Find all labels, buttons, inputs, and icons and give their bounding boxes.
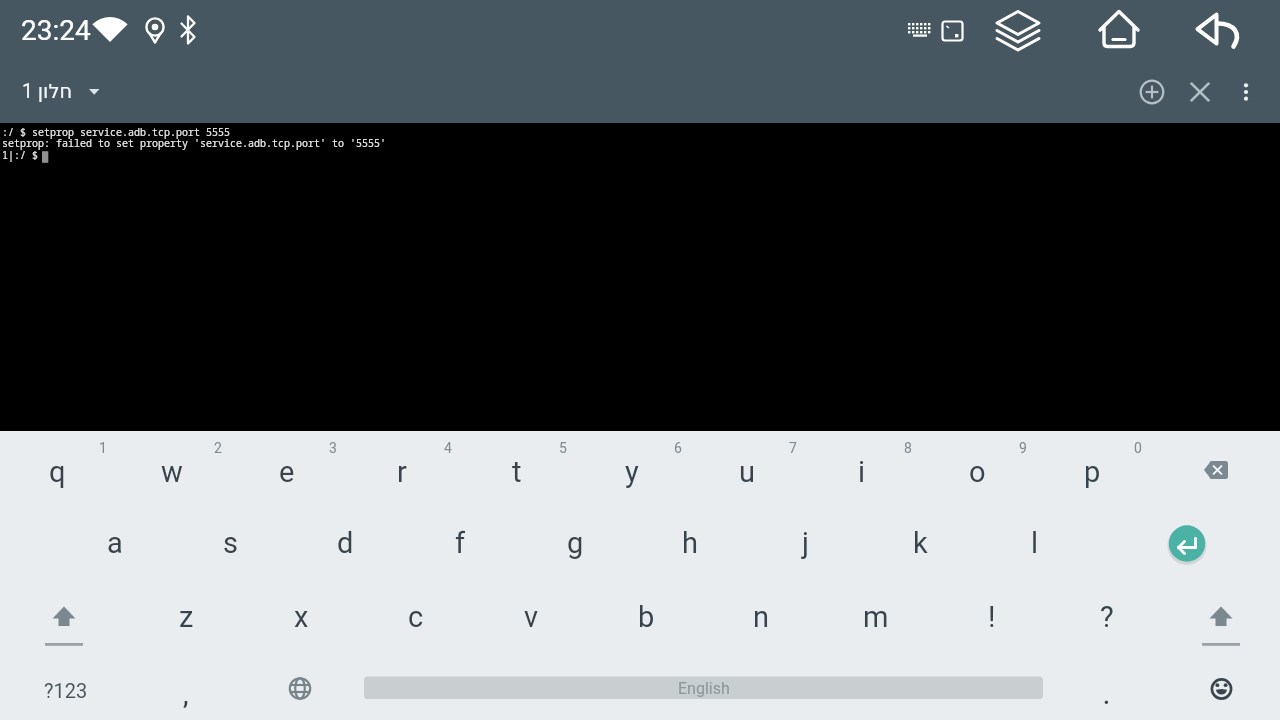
staticText: b [638, 600, 655, 634]
button[interactable] [1164, 581, 1278, 651]
button[interactable]: b [589, 582, 703, 652]
button[interactable]: w [115, 437, 229, 507]
button[interactable]: h [633, 508, 747, 578]
staticText: v [524, 600, 539, 634]
button[interactable]: ! [935, 582, 1049, 652]
button[interactable]: , [131, 670, 241, 720]
staticText: n [753, 600, 770, 634]
staticText: חלון 1 [22, 80, 73, 103]
staticText: . [1103, 681, 1110, 710]
button[interactable]: u [690, 437, 804, 507]
button[interactable]: v [474, 582, 588, 652]
staticText: 1 [99, 440, 107, 456]
staticText: ?123 [44, 679, 88, 702]
button[interactable]: a [58, 508, 172, 578]
staticText: k [913, 526, 928, 560]
staticText: l [1031, 526, 1039, 560]
button[interactable]: r [345, 437, 459, 507]
staticText: j [802, 526, 809, 560]
button[interactable] [1130, 508, 1244, 578]
staticText: x [294, 600, 309, 634]
button[interactable]: o [920, 437, 1034, 507]
staticText: d [337, 526, 354, 560]
button[interactable]: n [704, 582, 818, 652]
staticText: u [739, 455, 755, 489]
button[interactable]: g [518, 508, 632, 578]
button[interactable] [7, 581, 121, 651]
button[interactable]: English [364, 665, 1043, 711]
staticText: 4 [444, 440, 452, 456]
staticText: c [408, 600, 424, 634]
button[interactable]: t [460, 437, 574, 507]
staticText: a [107, 526, 123, 560]
button[interactable]: q [0, 437, 114, 507]
staticText: h [682, 526, 698, 560]
staticText: z [179, 600, 194, 634]
staticText: 6 [674, 440, 682, 456]
button[interactable]: חלון 1 [22, 68, 114, 114]
staticText: :/ $ setprop service.adb.tcp.port 5555 [2, 125, 230, 139]
button[interactable] [1134, 74, 1170, 110]
staticText: , [183, 681, 189, 710]
button[interactable]: ?123 [3, 655, 128, 720]
button[interactable]: y [575, 437, 689, 507]
staticText: 5 [559, 440, 567, 456]
staticText: y [625, 455, 639, 489]
button[interactable]: z [129, 582, 243, 652]
staticText: w [161, 455, 183, 489]
staticText: p [1084, 455, 1101, 489]
staticText: r [397, 455, 407, 489]
staticText: ! [988, 600, 996, 634]
staticText: 3 [329, 440, 337, 456]
button[interactable]: m [819, 582, 933, 652]
staticText: 7 [789, 440, 797, 456]
staticText: 23:24 [21, 14, 91, 47]
staticText: m [863, 600, 889, 634]
staticText: i [858, 455, 866, 489]
staticText: setprop: failed to set property 'service… [2, 136, 386, 150]
button[interactable]: ? [1050, 582, 1164, 652]
staticText: t [512, 455, 522, 489]
button[interactable] [1182, 74, 1218, 110]
staticText: q [49, 455, 66, 489]
staticText: 0 [1134, 440, 1142, 456]
button[interactable]: i [805, 437, 919, 507]
button[interactable] [1228, 74, 1264, 110]
button[interactable]: s [173, 508, 287, 578]
staticText: ? [1100, 600, 1114, 634]
staticText: s [223, 526, 238, 560]
staticText: English [678, 679, 730, 698]
staticText: o [969, 455, 986, 489]
button[interactable]: e [230, 437, 344, 507]
button[interactable] [1164, 654, 1278, 720]
button[interactable] [243, 654, 357, 720]
staticText: 8 [904, 440, 912, 456]
staticText: e [279, 455, 295, 489]
staticText: 9 [1019, 440, 1027, 456]
button[interactable]: l [978, 508, 1092, 578]
button[interactable]: . [1051, 670, 1161, 720]
staticText: f [455, 526, 466, 560]
button[interactable]: k [863, 508, 977, 578]
staticText: 1|:/ $ [2, 148, 38, 162]
staticText: 2 [214, 440, 222, 456]
button[interactable]: c [359, 582, 473, 652]
button[interactable] [1159, 435, 1273, 505]
button[interactable]: j [748, 508, 862, 578]
button[interactable]: f [403, 508, 517, 578]
staticText: g [567, 526, 584, 560]
button[interactable]: x [244, 582, 358, 652]
button[interactable]: d [288, 508, 402, 578]
button[interactable]: p [1035, 437, 1149, 507]
